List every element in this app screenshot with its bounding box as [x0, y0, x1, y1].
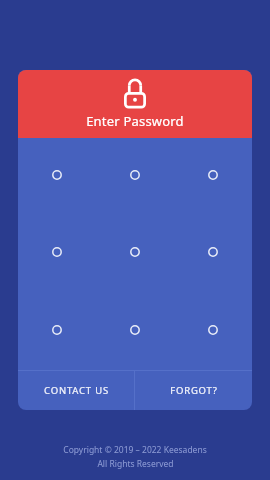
staticText: Enter Password [86, 112, 184, 130]
staticText: All Rights Reserved [97, 458, 174, 470]
button[interactable]: CONTACT US [18, 371, 134, 410]
staticText: FORGOT? [170, 384, 218, 397]
staticText: CONTACT US [44, 384, 109, 397]
button[interactable]: FORGOT? [135, 371, 252, 410]
other: Locked [122, 78, 148, 108]
staticText: Copyright © 2019 – 2022 Keesadens [63, 444, 207, 456]
